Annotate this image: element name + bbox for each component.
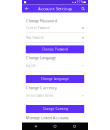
staticText: Change Currency — [42, 107, 67, 111]
staticText: Change Password — [42, 48, 68, 51]
button[interactable]: English — [22, 60, 88, 71]
staticText: Change Currency — [26, 85, 57, 90]
staticText: Account Settings — [38, 6, 72, 11]
staticText: 97% — [77, 0, 83, 4]
button[interactable]: Home — [49, 122, 61, 130]
staticText: Current Password — [26, 26, 50, 30]
button[interactable]: Change Currency — [22, 105, 88, 113]
button[interactable]: Change Password — [22, 45, 88, 53]
staticText: Change Language — [26, 55, 56, 60]
staticText: Change Password — [26, 18, 57, 23]
button[interactable]: Current Password — [22, 24, 88, 33]
staticText: Change Language — [41, 77, 69, 81]
button[interactable]: Back — [29, 122, 41, 130]
staticText: New Password — [26, 36, 44, 39]
button[interactable]: Back — [23, 4, 31, 13]
button[interactable]: Recents — [68, 122, 80, 130]
button[interactable]: Search — [79, 4, 87, 13]
staticText: Manage Linked Accounts — [26, 115, 69, 120]
staticText: United States Dollar — [26, 94, 53, 97]
staticText: English — [26, 64, 36, 67]
button[interactable]: Change Language — [22, 75, 88, 83]
button[interactable]: United States Dollar — [22, 90, 88, 101]
button[interactable]: New Password — [22, 33, 88, 43]
